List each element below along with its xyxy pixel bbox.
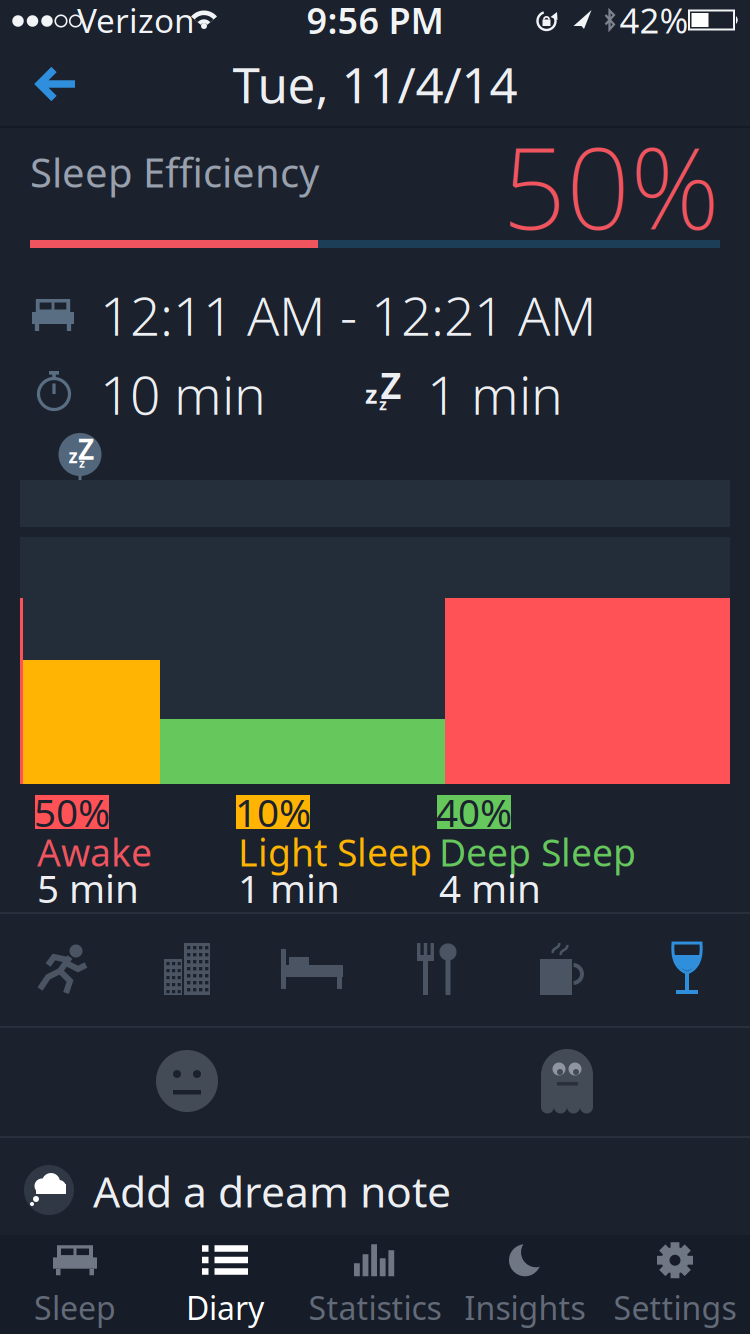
staticText: Add a dream note	[93, 1163, 451, 1219]
button[interactable]: Exercise	[7, 921, 117, 1017]
button[interactable]: Caffeine	[507, 921, 617, 1017]
staticText: 12:11 AM - 12:21 AM	[100, 280, 597, 350]
staticText: 42%	[619, 0, 688, 43]
staticText: Verizon	[77, 0, 195, 42]
staticText: Diary	[186, 1286, 264, 1329]
button[interactable]: Mood	[112, 1029, 262, 1133]
button[interactable]: Diary	[151, 1240, 299, 1332]
staticText: Statistics	[308, 1286, 441, 1329]
staticText: z	[79, 455, 85, 471]
button[interactable]: Stressful day	[132, 921, 242, 1017]
button[interactable]: Ate late	[382, 921, 492, 1017]
staticText: Z	[380, 361, 401, 409]
staticText: Deep Sleep	[439, 827, 636, 877]
staticText: 10%	[235, 786, 311, 838]
button[interactable]: Sleep	[1, 1240, 149, 1332]
staticText: Sleep	[34, 1286, 116, 1329]
button[interactable]: Add a dream note	[0, 1140, 750, 1240]
staticText: z	[68, 444, 77, 468]
staticText: z	[365, 377, 377, 411]
staticText: 50%	[502, 112, 720, 260]
staticText: Light Sleep	[238, 827, 432, 877]
button[interactable]: Back	[15, 47, 99, 121]
staticText: 50%	[34, 786, 110, 838]
staticText: Sleep Efficiency	[30, 145, 319, 198]
staticText: z	[379, 393, 387, 415]
button[interactable]: Settings	[601, 1240, 749, 1332]
staticText: 5 min	[37, 862, 139, 914]
staticText: Awake	[37, 827, 152, 877]
button[interactable]: Unusual bed	[257, 921, 367, 1017]
staticText: 1 min	[238, 862, 340, 914]
staticText: Settings	[613, 1286, 736, 1329]
staticText: 9:56 PM	[306, 0, 443, 44]
button[interactable]: Alcohol	[632, 921, 742, 1017]
staticText: 10 min	[100, 359, 266, 429]
button[interactable]: Statistics	[301, 1240, 449, 1332]
button[interactable]: Dream	[492, 1029, 642, 1133]
staticText: 40%	[436, 786, 512, 838]
staticText: Tue, 11/4/14	[232, 51, 517, 117]
staticText: Insights	[464, 1286, 585, 1329]
staticText: 1 min	[427, 359, 563, 429]
staticText: Z	[78, 430, 94, 468]
staticText: 4 min	[439, 862, 541, 914]
button[interactable]: Insights	[451, 1240, 599, 1332]
